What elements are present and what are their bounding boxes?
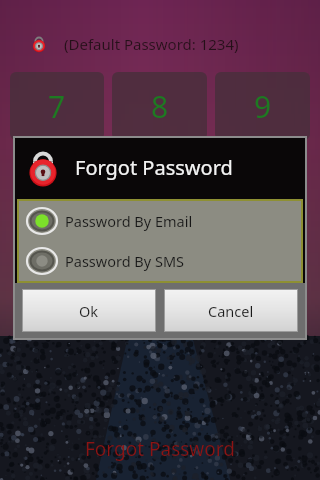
staticText: Cancel: [208, 301, 254, 321]
staticText: Forgot Password: [85, 436, 235, 462]
staticText: (Default Password: 1234): [64, 34, 239, 54]
button[interactable]: 7: [10, 72, 104, 140]
staticText: Ok: [79, 301, 99, 321]
staticText: 7: [48, 86, 66, 127]
staticText: 8: [151, 86, 169, 127]
button[interactable]: Forgot Password: [85, 436, 235, 462]
other: Locked: [30, 35, 48, 53]
staticText: Password By Email: [65, 211, 193, 231]
button[interactable]: Ok: [23, 290, 155, 331]
button[interactable]: 9: [215, 72, 310, 140]
staticText: 9: [254, 86, 272, 127]
button[interactable]: Cancel: [165, 290, 297, 331]
staticText: Password By SMS: [65, 251, 185, 271]
button[interactable]: Password By SMS: [19, 244, 301, 278]
staticText: Forgot Password: [75, 154, 233, 181]
other: Lock: [23, 148, 63, 188]
button[interactable]: 8: [112, 72, 207, 140]
button[interactable]: Password By Email: [19, 204, 301, 238]
